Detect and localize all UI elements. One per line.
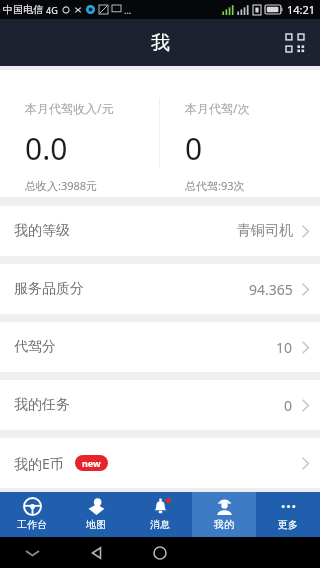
button[interactable]: 消息 <box>128 492 192 537</box>
staticText: 我的 <box>214 518 234 531</box>
staticText: 我的任务 <box>14 396 70 414</box>
staticText: 我的E币 <box>14 454 64 473</box>
staticText: 0.0 <box>25 128 68 169</box>
staticText: 0 <box>185 128 203 169</box>
staticText: 本月代驾收入/元 <box>25 100 114 116</box>
staticText: 14:21 <box>287 2 316 17</box>
staticText: 更多 <box>278 518 298 531</box>
button[interactable]: 服务品质分 <box>0 264 320 314</box>
staticText: 我的等级 <box>14 222 70 240</box>
staticText: 总收入:3988元 <box>25 178 98 193</box>
button[interactable]: 我的E币 <box>0 438 320 488</box>
staticText: 本月代驾/次 <box>185 100 250 116</box>
staticText: 消息 <box>150 518 170 531</box>
staticText: 工作台 <box>17 518 47 531</box>
staticText: 服务品质分 <box>14 280 84 298</box>
button[interactable]: 代驾分 <box>0 322 320 372</box>
staticText: 10 <box>276 338 293 357</box>
staticText: ... <box>124 4 132 16</box>
staticText: 代驾分 <box>14 338 56 356</box>
staticText: 4G <box>46 4 58 16</box>
button[interactable]: 我的 <box>192 492 256 537</box>
button[interactable]: Home <box>128 537 192 568</box>
staticText: 94.365 <box>249 280 293 299</box>
staticText: 0 <box>284 396 293 415</box>
button[interactable]: Scan QR code <box>278 26 312 60</box>
button[interactable]: 我的任务 <box>0 380 320 430</box>
button[interactable]: Hide navigation <box>0 537 64 568</box>
button[interactable]: 我的等级 <box>0 206 320 256</box>
button[interactable]: Back <box>64 537 128 568</box>
staticText: 中国电信 <box>3 3 43 16</box>
button[interactable]: 更多 <box>256 492 320 537</box>
staticText: 地图 <box>86 518 106 531</box>
staticText: new <box>82 457 101 469</box>
staticText: 总代驾:93次 <box>185 178 245 193</box>
staticText: 青铜司机 <box>237 222 293 240</box>
button[interactable]: 地图 <box>64 492 128 537</box>
button[interactable]: 工作台 <box>0 492 64 537</box>
staticText: 我 <box>151 31 170 55</box>
